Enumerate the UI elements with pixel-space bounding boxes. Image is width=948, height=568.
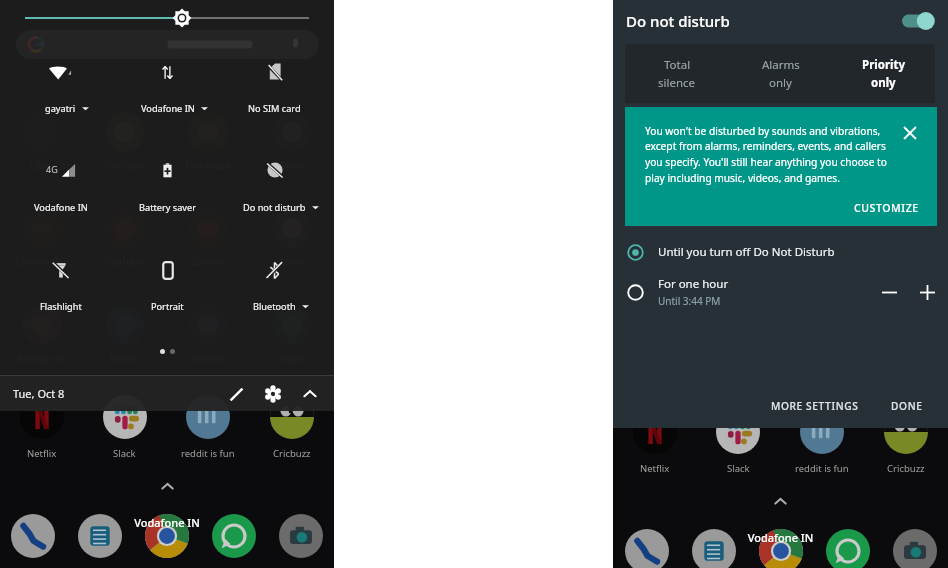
staticText: gayatri [45,102,76,115]
button[interactable]: Edit [222,380,250,408]
button[interactable]: For one hour [613,270,948,314]
button[interactable]: MORE SETTINGS [763,394,867,418]
staticText: Slack [727,462,750,475]
staticText: Cricbuzz [887,462,925,475]
button[interactable] [613,410,696,454]
staticText: Alarms [762,57,800,73]
button[interactable]: Settings [259,380,287,408]
staticText: Cricbuzz [273,447,311,460]
staticText: Vodafone IN [613,530,948,545]
button[interactable]: Do not disturb toggle [901,11,935,31]
staticText: Uber [30,159,53,172]
button[interactable] [166,395,250,439]
button[interactable] [114,144,221,196]
staticText: For one hour [658,276,729,292]
button[interactable]: Increase [911,276,943,308]
staticText: Do not disturb [243,201,306,214]
staticText: Vodafone IN [34,201,88,214]
button[interactable]: Alarms [729,44,832,103]
button[interactable]: Priority [832,44,935,103]
button[interactable] [250,395,334,439]
button[interactable] [66,514,133,558]
staticText: Netflix [27,447,57,460]
staticText: Portrait [151,300,184,313]
staticText: Netflix [640,462,670,475]
staticText: No SIM card [248,102,301,115]
button[interactable] [83,395,166,439]
staticText: Flashlight [40,300,82,313]
staticText: only [871,75,896,91]
staticText: reddit is fun [181,447,235,460]
staticText: Slack [113,447,136,460]
button[interactable]: DONE [883,394,931,418]
button[interactable] [7,46,114,98]
staticText: Total [664,57,691,73]
staticText: reddit is fun [795,462,849,475]
button[interactable]: CUSTOMIZE [848,196,925,220]
button[interactable] [114,46,221,98]
staticText: Vodafone IN [0,515,334,530]
button[interactable] [7,244,114,296]
button[interactable]: Until you turn off Do Not Disturb [613,236,948,268]
staticText: Tue, Oct 8 [13,386,65,401]
staticText: silence [658,75,696,91]
button[interactable] [696,410,780,454]
button[interactable] [747,529,814,568]
staticText: DONE [891,399,923,413]
button[interactable] [200,514,267,558]
button[interactable] [221,144,328,196]
button[interactable] [221,46,328,98]
button[interactable]: 4G [7,144,114,196]
button[interactable] [0,395,83,439]
button[interactable]: Close [898,121,922,145]
staticText: Until 3:44 PM [658,294,721,308]
staticText: Vodafone IN [141,102,195,115]
button[interactable] [881,529,948,568]
button[interactable] [133,514,200,558]
staticText: Until you turn off Do Not Disturb [658,244,835,260]
staticText: You won't be disturbed by sounds and vib… [645,124,897,185]
button[interactable]: Collapse [296,380,324,408]
staticText: Battery saver [139,201,197,214]
staticText: MORE SETTINGS [771,399,859,413]
staticText: Gmail [279,255,306,268]
button[interactable]: Total [625,44,729,103]
button[interactable] [114,244,221,296]
staticText: Priority [862,57,906,73]
button[interactable] [613,529,680,568]
staticText: CUSTOMIZE [854,201,919,215]
staticText: Gmail [279,159,306,172]
staticText: Camera Roll [15,255,69,268]
staticText: Do not disturb [626,11,730,31]
button[interactable] [221,244,328,296]
button[interactable] [16,30,319,59]
staticText: only [769,75,792,91]
button[interactable]: Decrease [873,276,905,308]
button[interactable] [814,529,881,568]
button[interactable] [0,514,66,558]
staticText: 4G [46,163,58,175]
button[interactable] [780,410,864,454]
staticText: Bluetooth [253,300,296,313]
button[interactable] [680,529,747,568]
button[interactable] [864,410,948,454]
button[interactable] [267,514,334,558]
